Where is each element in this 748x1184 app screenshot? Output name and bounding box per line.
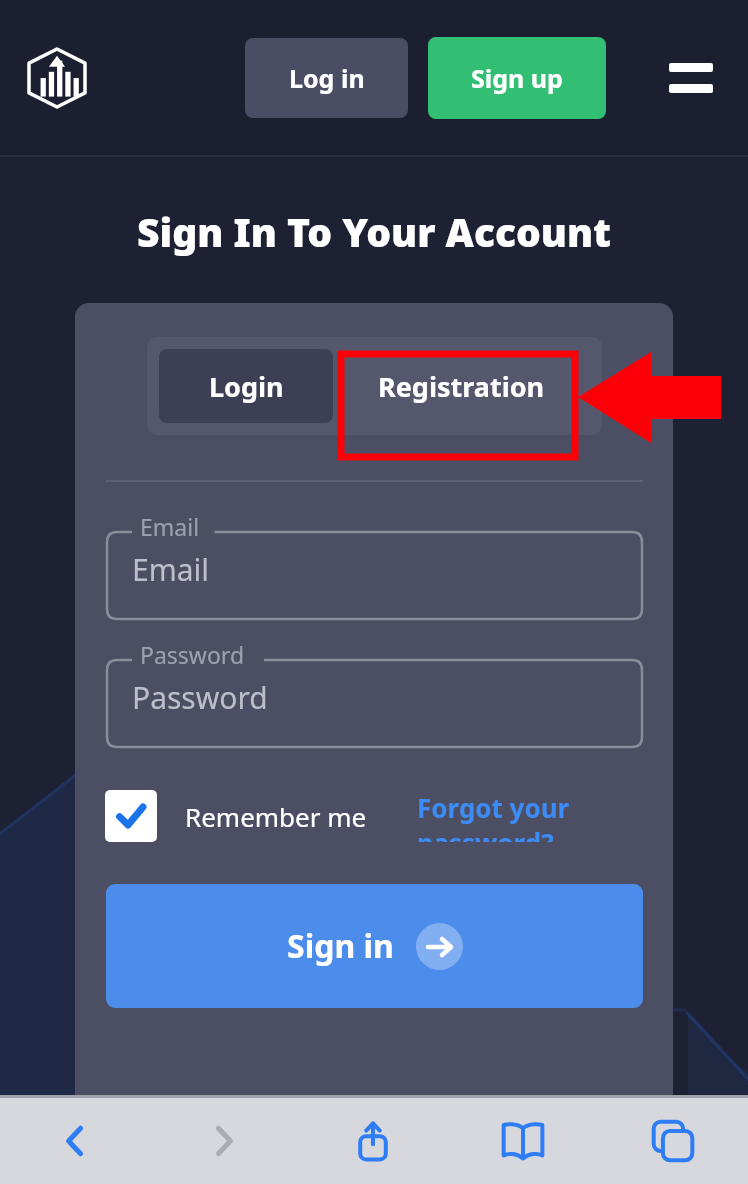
staticText: Sign In To Your Account bbox=[0, 205, 748, 258]
staticText: Log in bbox=[289, 61, 365, 95]
button[interactable]: Forward bbox=[149, 1098, 298, 1184]
button[interactable]: Remember me checkbox bbox=[105, 790, 157, 842]
staticText: Sign up bbox=[471, 61, 563, 95]
button[interactable]: Share bbox=[298, 1098, 448, 1184]
staticText: Password bbox=[140, 639, 245, 670]
button[interactable]: Log in bbox=[245, 38, 408, 118]
button[interactable]: Sign up bbox=[428, 37, 606, 119]
button[interactable]: Sign in bbox=[106, 884, 643, 1008]
staticText: Remember me bbox=[185, 799, 367, 834]
staticText: Email bbox=[132, 549, 210, 590]
staticText: Forgot your password? bbox=[417, 790, 673, 842]
staticText: Password bbox=[132, 677, 268, 718]
staticText: Sign in bbox=[287, 924, 394, 968]
button[interactable]: Back bbox=[0, 1098, 149, 1184]
button[interactable]: Home logo bbox=[26, 47, 88, 109]
staticText: Email bbox=[140, 511, 200, 542]
button[interactable]: Forgot your password? bbox=[417, 790, 673, 842]
staticText: Registration bbox=[378, 368, 545, 405]
button[interactable]: Tabs bbox=[598, 1098, 748, 1184]
button[interactable]: Registration bbox=[333, 349, 590, 423]
button[interactable]: Bookmarks bbox=[448, 1098, 598, 1184]
button[interactable]: Password bbox=[106, 650, 643, 748]
button[interactable]: Email bbox=[106, 522, 643, 620]
staticText: Login bbox=[209, 368, 284, 405]
button[interactable]: Login bbox=[159, 349, 333, 423]
button[interactable]: Menu bbox=[664, 51, 718, 105]
